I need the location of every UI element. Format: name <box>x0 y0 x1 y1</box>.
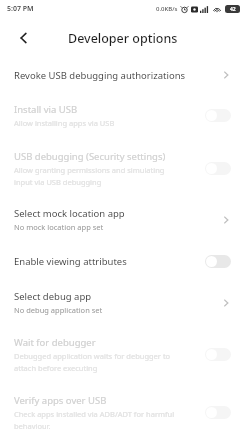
staticText: Developer options <box>68 30 178 47</box>
button[interactable]: Install via USB <box>205 109 231 122</box>
staticText: Allow granting permissions and simulatin… <box>14 165 165 175</box>
staticText: Verify apps over USB <box>14 394 107 407</box>
staticText: No debug application set <box>14 305 103 315</box>
button[interactable]: USB debugging (Security settings) <box>205 162 231 175</box>
staticText: Install via USB <box>14 103 78 116</box>
button[interactable]: Install via USB <box>0 92 245 139</box>
staticText: USB debugging (Security settings) <box>14 150 166 163</box>
staticText: 0.0KB/s <box>156 5 178 13</box>
button[interactable]: Verify apps over USB <box>205 406 231 419</box>
staticText: Debugged application waits for debugger … <box>14 351 171 361</box>
staticText: Check apps installed via ADB/ADT for har… <box>14 409 175 419</box>
button[interactable]: Back <box>12 26 36 50</box>
button[interactable]: Select debug app <box>0 280 245 325</box>
staticText: Wait for debugger <box>14 336 96 349</box>
button[interactable]: Enable viewing attributes <box>205 255 231 268</box>
staticText: input via USB debugging <box>14 177 102 187</box>
staticText: Allow installing apps via USB <box>14 118 115 128</box>
staticText: Enable viewing attributes <box>14 255 127 268</box>
staticText: Select debug app <box>14 290 92 303</box>
staticText: behaviour. <box>14 421 51 431</box>
staticText: 42 <box>230 6 236 13</box>
button[interactable]: Wait for debugger <box>205 348 231 361</box>
button[interactable]: USB debugging (Security settings) <box>0 139 245 197</box>
staticText: attach before executing <box>14 363 98 373</box>
button[interactable]: Revoke USB debugging authorizations <box>0 58 245 92</box>
staticText: Revoke USB debugging authorizations <box>14 69 186 82</box>
button[interactable]: Verify apps over USB <box>0 383 245 441</box>
staticText: 5:07 PM <box>7 4 34 14</box>
button[interactable]: Enable viewing attributes <box>0 242 245 280</box>
button[interactable]: Wait for debugger <box>0 325 245 383</box>
staticText: Select mock location app <box>14 207 125 220</box>
staticText: No mock location app set <box>14 222 104 232</box>
button[interactable]: Select mock location app <box>0 197 245 242</box>
